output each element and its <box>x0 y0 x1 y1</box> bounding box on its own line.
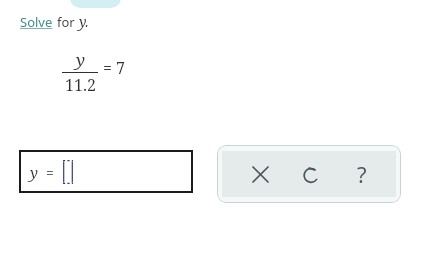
staticText: ? <box>357 159 367 189</box>
staticText: 11.2 <box>65 74 96 96</box>
staticText: y <box>76 48 85 71</box>
staticText: y <box>30 162 38 182</box>
button[interactable]: Solve <box>20 13 53 31</box>
staticText: for <box>57 13 75 31</box>
staticText: = 7 <box>103 57 126 79</box>
button[interactable]: Help <box>345 157 379 191</box>
staticText: y. <box>79 12 89 31</box>
button[interactable]: Clear <box>243 157 277 191</box>
staticText: = <box>46 163 54 182</box>
button[interactable]: y <box>19 150 193 193</box>
button[interactable]: Undo <box>294 157 328 191</box>
